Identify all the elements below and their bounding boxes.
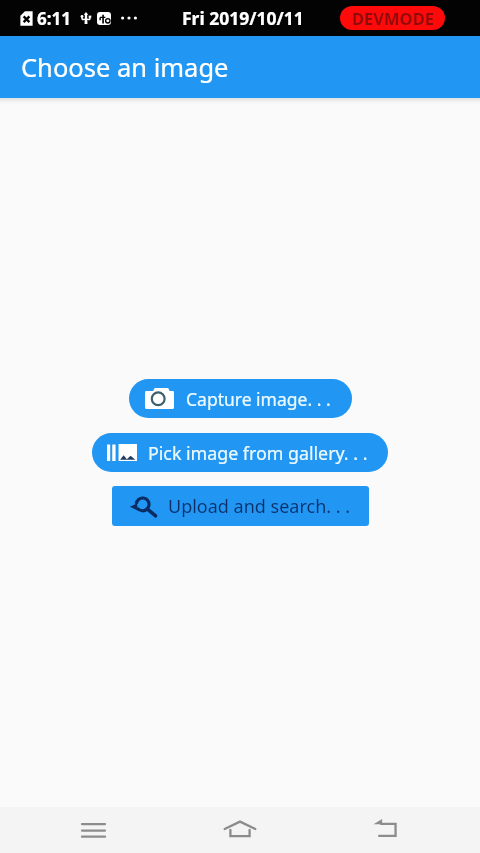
button[interactable]: Pick image from gallery. . . <box>92 433 388 472</box>
button[interactable]: DEVMODE <box>340 6 445 30</box>
staticText: Choose an image <box>21 50 229 85</box>
button[interactable]: Home <box>216 806 263 852</box>
button[interactable]: Recent apps <box>70 807 117 853</box>
button[interactable]: Upload and search. . . <box>112 486 369 526</box>
staticText: DEVMODE <box>352 7 434 29</box>
staticText: Pick image from gallery. . . <box>148 441 368 465</box>
staticText: Capture image. . . <box>186 387 331 411</box>
button[interactable]: Capture image. . . <box>129 379 352 418</box>
staticText: Upload and search. . . <box>168 494 351 519</box>
staticText: Fri 2019/10/11 <box>182 6 304 30</box>
button[interactable]: Back <box>361 804 408 850</box>
staticText: 6:11 <box>37 7 71 30</box>
